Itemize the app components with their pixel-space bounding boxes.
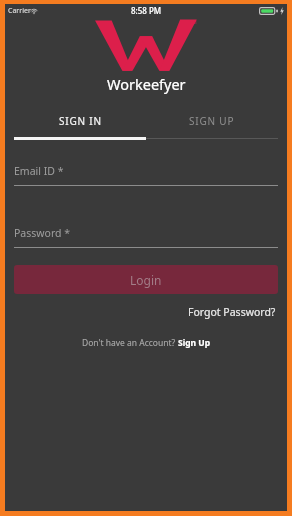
staticText: Login [130, 272, 162, 288]
button[interactable]: Login [14, 265, 278, 294]
button[interactable]: SIGN IN [14, 110, 146, 132]
staticText: TM [189, 19, 197, 26]
staticText: Workeefyer [107, 74, 186, 94]
staticText: SIGN IN [59, 114, 102, 128]
staticText: SIGN UP [189, 114, 235, 128]
staticText: Email ID * [14, 164, 64, 178]
other: Battery charging [259, 7, 278, 15]
staticText: 8:58 PM [131, 5, 162, 16]
button[interactable]: Email ID * [14, 164, 278, 186]
staticText: Don't have an Account? [82, 337, 178, 349]
button[interactable]: Password * [14, 226, 278, 248]
button[interactable]: Forgot Password? [186, 303, 278, 321]
other: Workeefyer logo [94, 19, 198, 73]
button[interactable]: Sign Up [178, 337, 211, 349]
staticText: Sign Up [178, 337, 211, 349]
other: Wi-Fi signal [30, 7, 38, 15]
button[interactable]: SIGN UP [146, 110, 278, 132]
staticText: Password * [14, 226, 71, 240]
staticText: Forgot Password? [188, 305, 276, 319]
staticText: Carrier [8, 6, 31, 16]
